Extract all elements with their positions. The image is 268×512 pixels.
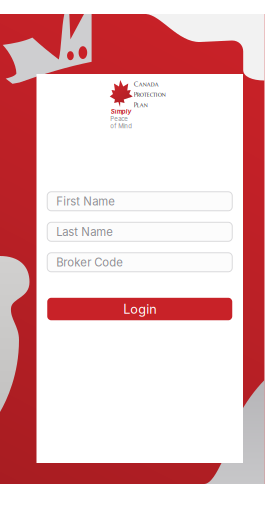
button[interactable]: Login (47, 298, 232, 320)
staticText: Peace of Mind (110, 115, 132, 130)
staticText: Canada (134, 80, 159, 88)
staticText: Login (123, 301, 156, 317)
staticText: First Name (56, 194, 115, 208)
button[interactable]: Last Name (47, 222, 232, 241)
button[interactable]: First Name (47, 192, 232, 211)
staticText: Simply (111, 108, 132, 115)
button[interactable]: Broker Code (47, 253, 232, 272)
staticText: Protection (134, 90, 166, 99)
staticText: Broker Code (56, 255, 123, 269)
staticText: Plan (134, 101, 148, 109)
staticText: Last Name (56, 225, 113, 239)
